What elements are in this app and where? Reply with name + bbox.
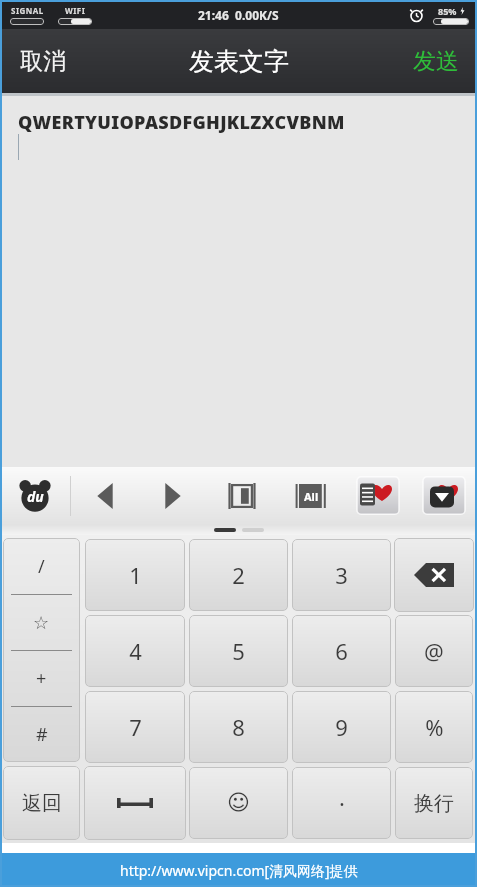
button[interactable]: 5 <box>189 615 288 687</box>
other: Alarm <box>410 9 423 22</box>
staticText: http://www.vipcn.com[清风网络]提供 <box>120 861 358 880</box>
button[interactable]: 取消 <box>0 29 86 93</box>
staticText: / <box>38 554 45 579</box>
button[interactable]: Space <box>84 766 186 840</box>
button[interactable]: 7 <box>85 691 185 763</box>
staticText: 6 <box>335 636 348 666</box>
button[interactable]: / <box>3 538 80 762</box>
staticText: du <box>27 487 44 506</box>
staticText: @ <box>424 636 444 666</box>
staticText: 取消 <box>20 47 66 76</box>
button[interactable]: 9 <box>292 691 391 763</box>
staticText: 4 <box>129 636 142 666</box>
button[interactable]: 6 <box>292 615 391 687</box>
button[interactable]: 3 <box>292 539 391 611</box>
staticText: QWERTYUIOPASDFGHJKLZXCVBNM <box>18 110 345 135</box>
staticText: # <box>36 722 48 747</box>
staticText: WIFI <box>65 5 86 16</box>
button[interactable]: Move left <box>71 467 139 525</box>
button[interactable]: 2 <box>189 539 288 611</box>
staticText: 21:46 0.00K/S <box>198 7 279 23</box>
staticText: % <box>425 712 444 742</box>
button[interactable]: Hide keyboard <box>411 467 477 525</box>
staticText: + <box>36 666 47 691</box>
staticText: 返回 <box>22 791 62 816</box>
staticText: 3 <box>335 560 348 590</box>
button[interactable]: 4 <box>85 615 185 687</box>
staticText: 5 <box>232 636 245 666</box>
button[interactable]: % <box>395 691 473 763</box>
button[interactable]: ☺ <box>189 767 288 839</box>
staticText: 9 <box>335 712 348 742</box>
staticText: 发表文字 <box>189 46 289 77</box>
staticText: ☺ <box>227 790 250 816</box>
staticText: ☆ <box>33 612 50 633</box>
button[interactable]: Select all <box>276 467 345 525</box>
button[interactable]: 换行 <box>395 767 473 839</box>
button[interactable]: 1 <box>85 539 185 611</box>
staticText: 7 <box>129 712 142 742</box>
button[interactable]: 返回 <box>3 766 80 840</box>
staticText: 换行 <box>414 791 454 816</box>
button[interactable]: @ <box>395 615 473 687</box>
staticText: All <box>304 489 319 504</box>
staticText: 2 <box>232 560 245 590</box>
staticText: 85% <box>438 5 457 17</box>
button[interactable]: Baidu input <box>0 467 70 525</box>
button[interactable]: Backspace <box>394 538 474 612</box>
staticText: 发送 <box>413 47 459 76</box>
button[interactable]: Select <box>207 467 276 525</box>
staticText: 1 <box>129 560 142 590</box>
staticText: SIGNAL <box>11 5 44 16</box>
button[interactable]: Move right <box>139 467 207 525</box>
staticText: · <box>339 788 345 818</box>
button[interactable]: Clipboard <box>345 467 411 525</box>
staticText: 8 <box>232 712 245 742</box>
button[interactable]: · <box>292 767 391 839</box>
button[interactable]: 发送 <box>395 29 477 93</box>
button[interactable]: 8 <box>189 691 288 763</box>
